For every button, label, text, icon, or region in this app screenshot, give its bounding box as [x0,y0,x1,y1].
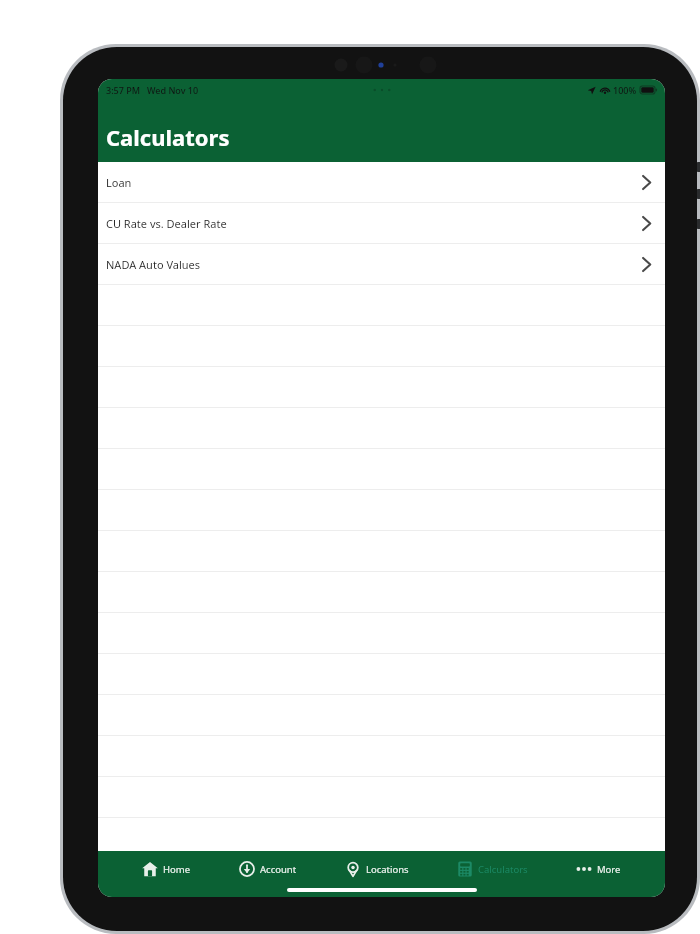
other: More [576,861,592,877]
staticText: Wed Nov 10 [147,84,199,96]
staticText: Account [260,863,297,876]
staticText: CU Rate vs. Dealer Rate [106,216,227,231]
staticText: Loan [106,175,132,190]
other: Account [239,861,255,877]
staticText: Calculators [106,122,230,152]
other: Home [142,861,158,877]
button[interactable]: More [572,857,625,881]
button[interactable]: NADA Auto Values [98,244,665,285]
staticText: Home [163,863,191,876]
staticText: 3:57 PM [106,84,140,96]
staticText: Locations [366,863,409,876]
button[interactable]: Home [138,857,195,881]
button[interactable]: Loan [98,162,665,203]
other: Locations [345,861,361,877]
button[interactable]: CU Rate vs. Dealer Rate [98,203,665,244]
staticText: NADA Auto Values [106,257,201,272]
button[interactable]: Account [235,857,301,881]
staticText: 100% [613,84,637,96]
other: Calculators [457,861,473,877]
button[interactable]: Calculators [453,857,532,881]
staticText: Calculators [478,863,528,876]
staticText: More [597,863,621,876]
button[interactable]: Locations [341,857,413,881]
